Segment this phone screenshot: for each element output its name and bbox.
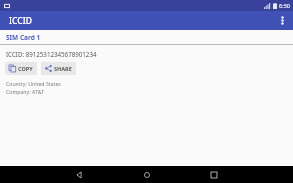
staticText: SIM Card 1 bbox=[6, 33, 41, 42]
button[interactable]: Recent apps bbox=[205, 166, 223, 183]
button[interactable]: Back bbox=[70, 166, 88, 183]
button[interactable]: Home bbox=[138, 166, 156, 183]
staticText: Country: United States bbox=[6, 80, 61, 87]
staticText: Company: AT&T bbox=[6, 88, 45, 95]
button[interactable]: More options bbox=[271, 11, 293, 30]
button[interactable]: COPY bbox=[5, 62, 37, 75]
button[interactable]: SHARE bbox=[41, 62, 76, 75]
staticText: ICCID bbox=[9, 15, 32, 27]
staticText: 6:50 bbox=[279, 2, 290, 9]
staticText: SHARE bbox=[54, 65, 72, 72]
staticText: ICCID: 89125312345678901234 bbox=[6, 50, 97, 58]
staticText: COPY bbox=[18, 65, 33, 72]
